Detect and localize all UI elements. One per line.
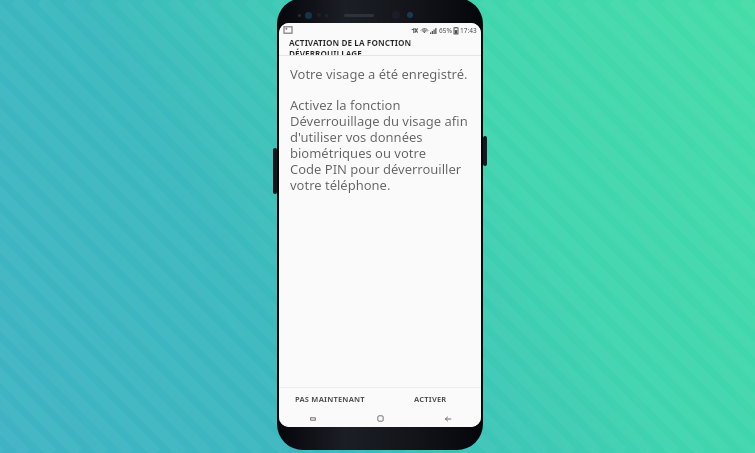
staticText: ACTIVER	[414, 394, 447, 404]
button[interactable]: ACTIVER	[380, 388, 481, 410]
staticText: 17:43	[460, 26, 477, 35]
staticText: Activez la fonction Déverrouillage du vi…	[290, 96, 470, 193]
button[interactable]: Home	[347, 410, 414, 427]
button[interactable]: Back	[414, 410, 481, 427]
staticText: 65%	[439, 26, 452, 35]
button[interactable]: PAS MAINTENANT	[279, 388, 380, 410]
staticText: PAS MAINTENANT	[295, 394, 365, 404]
button[interactable]: Recents	[279, 410, 347, 427]
staticText: Votre visage a été enregistré.	[290, 65, 468, 83]
staticText: ACTIVATION DE LA FONCTION DÉVERROUILLAGE…	[289, 37, 475, 55]
